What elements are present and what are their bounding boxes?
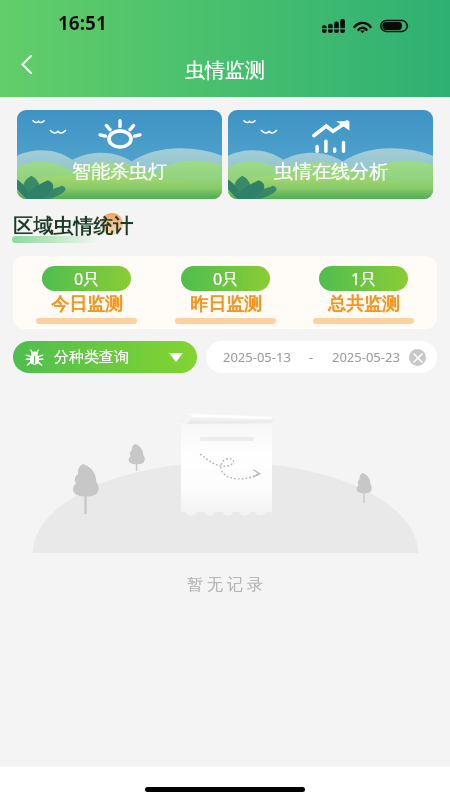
staticText: 分种类查询: [54, 348, 129, 367]
staticText: 0只: [74, 268, 100, 290]
staticText: -: [309, 348, 314, 366]
staticText: 虫情在线分析: [274, 160, 388, 184]
staticText: 0只: [213, 268, 239, 290]
button[interactable]: 0只: [175, 256, 276, 324]
staticText: 1只: [351, 268, 377, 290]
staticText: 16:51: [58, 10, 107, 36]
staticText: 今日监测: [51, 293, 123, 316]
staticText: 暂无记录: [185, 575, 265, 595]
staticText: 区域虫情统计: [13, 214, 133, 239]
button[interactable]: 1只: [313, 256, 414, 324]
button[interactable]: 虫情在线分析: [228, 110, 433, 199]
button[interactable]: 0只: [36, 256, 137, 324]
staticText: 昨日监测: [190, 293, 262, 316]
button[interactable]: Clear date range: [409, 349, 426, 366]
button[interactable]: 分种类查询: [13, 341, 197, 373]
button[interactable]: Back: [5, 42, 49, 86]
staticText: 2025-05-13: [223, 348, 291, 366]
staticText: 智能杀虫灯: [72, 160, 167, 184]
staticText: 2025-05-23: [332, 348, 400, 366]
button[interactable]: 智能杀虫灯: [17, 110, 222, 199]
button[interactable]: 2025-05-13: [206, 341, 437, 373]
staticText: 总共监测: [328, 293, 400, 316]
staticText: 虫情监测: [185, 58, 265, 83]
